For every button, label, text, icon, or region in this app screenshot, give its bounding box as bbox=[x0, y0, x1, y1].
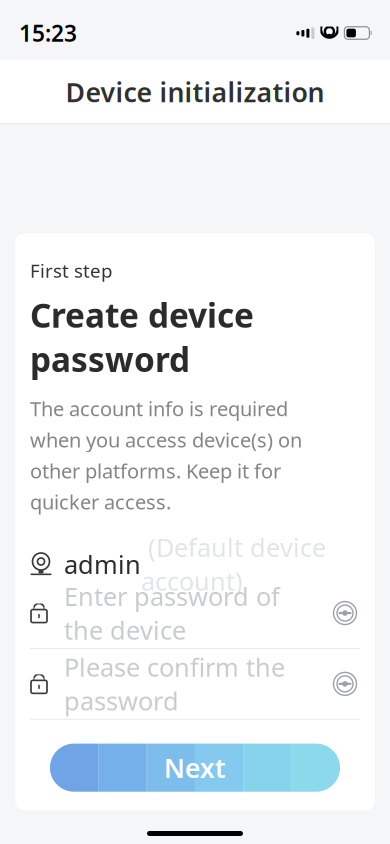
staticText: Device initialization bbox=[65, 74, 324, 110]
staticText: 15:23 bbox=[19, 18, 77, 48]
staticText: Please confirm the password bbox=[64, 650, 285, 717]
staticText: First step bbox=[30, 258, 112, 283]
button[interactable]: Next bbox=[50, 744, 340, 792]
staticText: The account info is required when you ac… bbox=[30, 395, 302, 515]
staticText: (Default device account) bbox=[141, 530, 326, 598]
staticText: Enter password of the device bbox=[64, 579, 280, 647]
button[interactable]: Show password bbox=[330, 669, 360, 699]
button[interactable]: Show password bbox=[330, 598, 360, 628]
staticText: admin bbox=[64, 547, 141, 581]
staticText: Create device password bbox=[30, 293, 254, 381]
staticText: Next bbox=[164, 750, 226, 785]
